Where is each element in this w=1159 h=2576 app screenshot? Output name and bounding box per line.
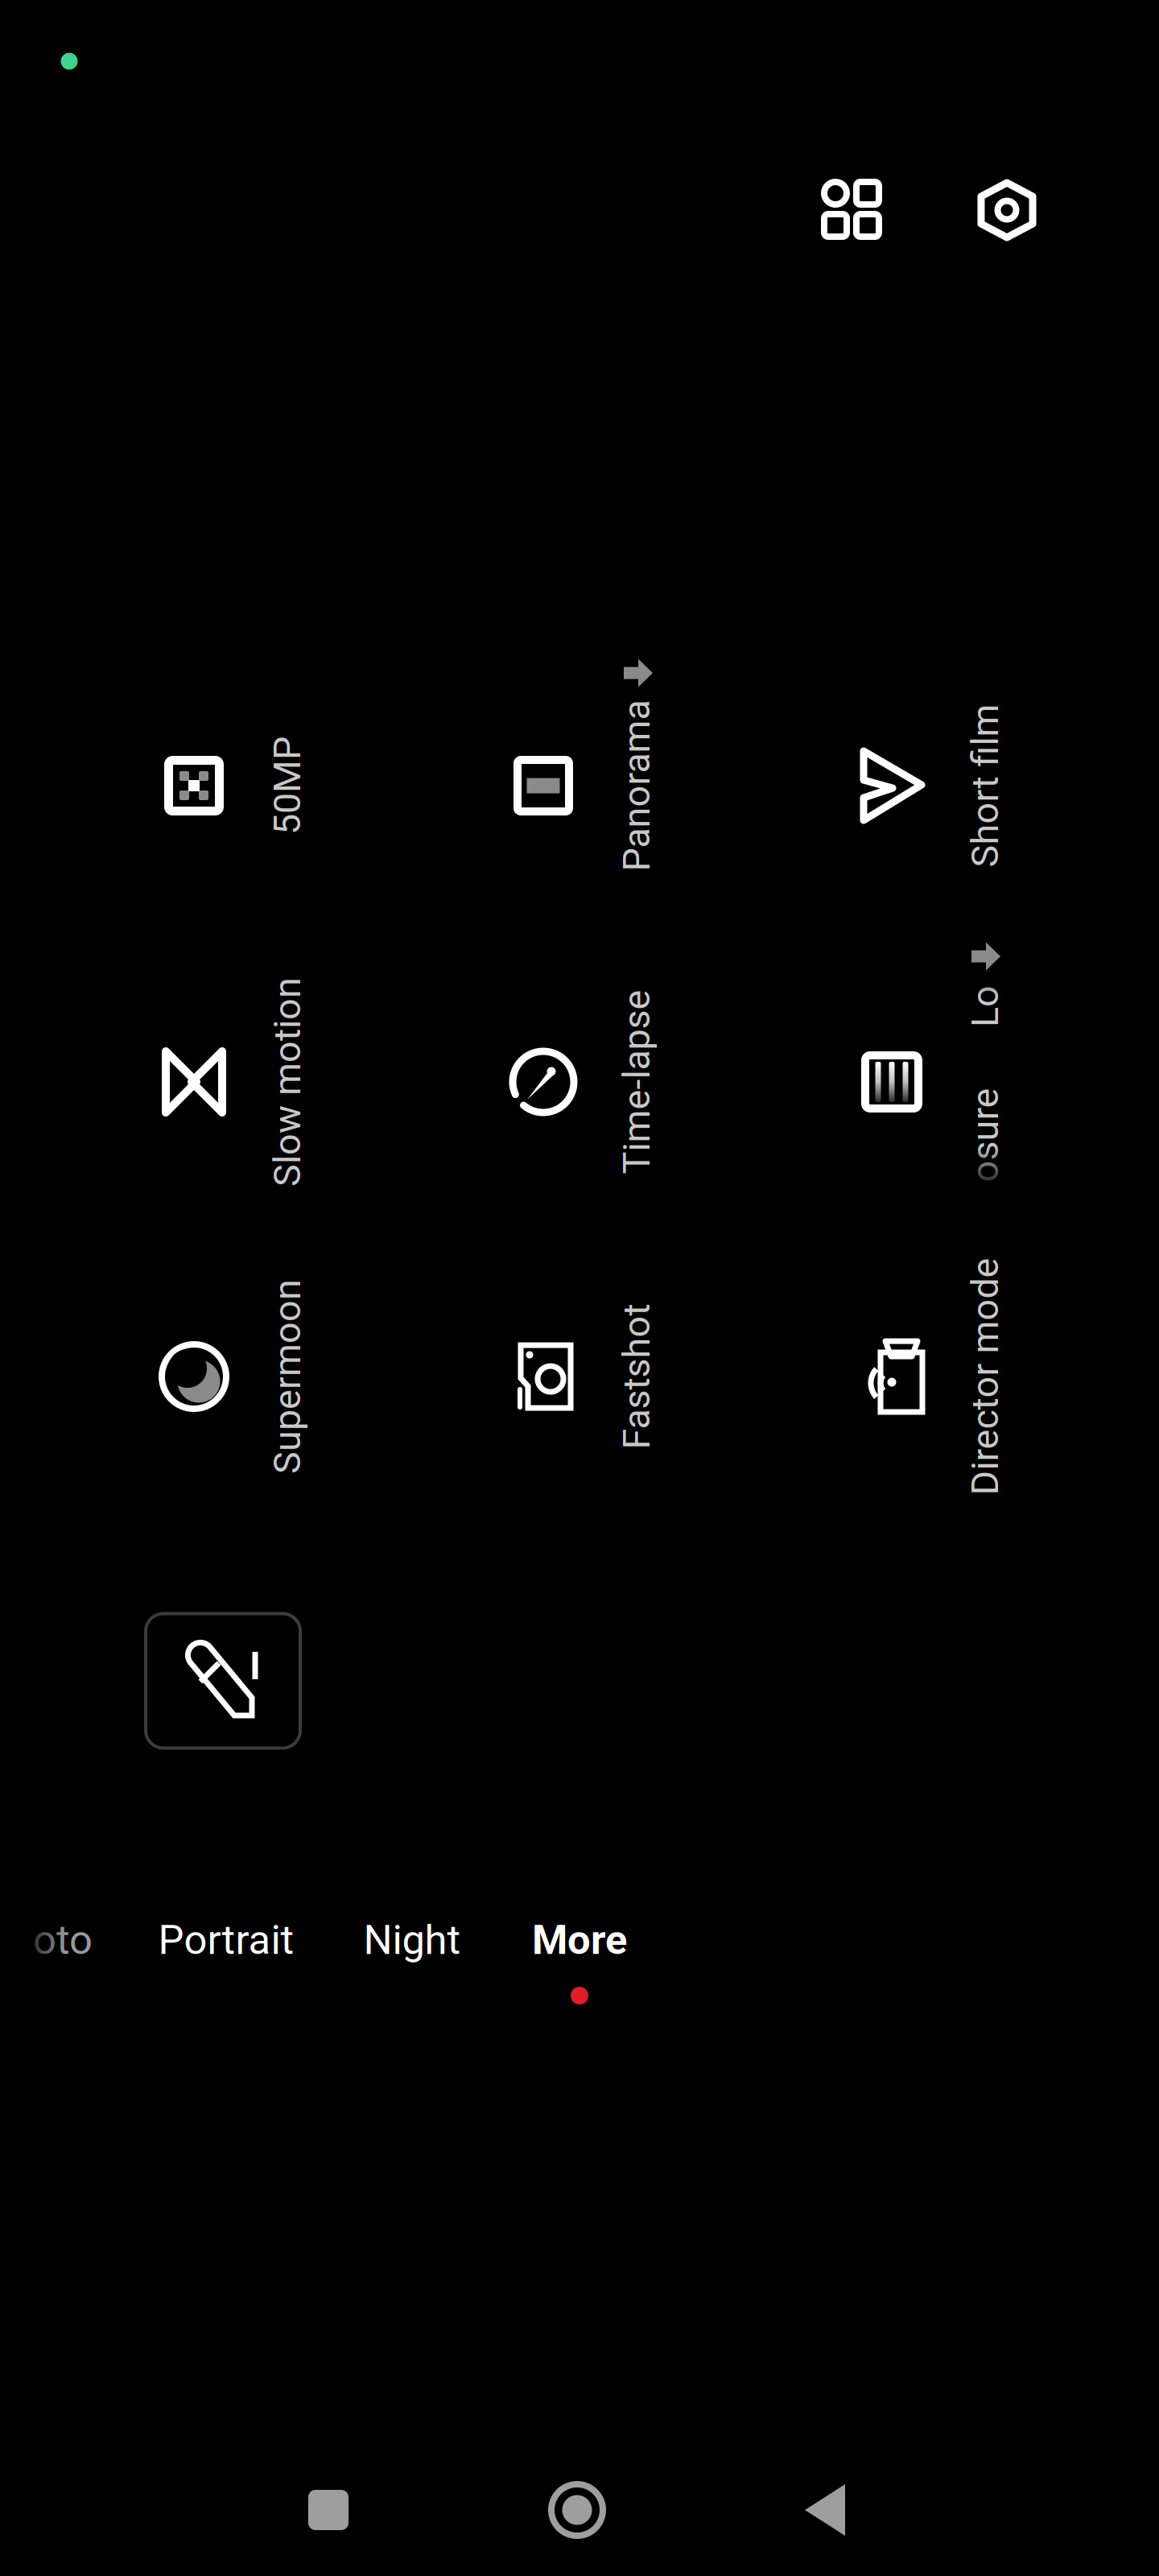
staticText: Short film: [903, 764, 1067, 808]
button[interactable]: oto: [0, 0, 1159, 2576]
button[interactable]: Lo: [0, 0, 1159, 2576]
button[interactable]: Supermoon: [0, 0, 1159, 2576]
button[interactable]: Director mode: [0, 0, 1159, 2576]
button[interactable]: Camera settings: [0, 0, 1159, 2576]
button[interactable]: Panorama: [0, 0, 1159, 2576]
staticText: More: [532, 1916, 627, 1964]
staticText: Portrait: [158, 1916, 294, 1964]
staticText: osure: [938, 1113, 1032, 1157]
button[interactable]: Mode grid: [0, 0, 1159, 2576]
staticText: Supermoon: [190, 1355, 385, 1399]
staticText: oto: [33, 1916, 93, 1964]
button[interactable]: Slow motion: [0, 0, 1159, 2576]
staticText: Fastshot: [564, 1355, 709, 1399]
button[interactable]: Edit modes: [0, 0, 1159, 2576]
button[interactable]: More: [0, 0, 1159, 2576]
button[interactable]: Short film: [0, 0, 1159, 2576]
staticText: Lo: [964, 984, 1006, 1028]
button[interactable]: 50MP: [0, 0, 1159, 2576]
button[interactable]: Portrait: [0, 0, 1159, 2576]
button[interactable]: Recent apps: [0, 0, 1159, 2576]
staticText: Panorama: [551, 764, 722, 808]
button[interactable]: Night: [0, 0, 1159, 2576]
staticText: Slow motion: [183, 1060, 392, 1104]
button[interactable]: Time-lapse: [0, 0, 1159, 2576]
staticText: 50MP: [238, 764, 336, 808]
staticText: Time-lapse: [544, 1060, 729, 1104]
button[interactable]: Fastshot: [0, 0, 1159, 2576]
button[interactable]: Back: [0, 0, 1159, 2576]
button[interactable]: Home: [0, 0, 1159, 2576]
staticText: Night: [363, 1916, 461, 1964]
staticText: Director mode: [866, 1355, 1104, 1399]
